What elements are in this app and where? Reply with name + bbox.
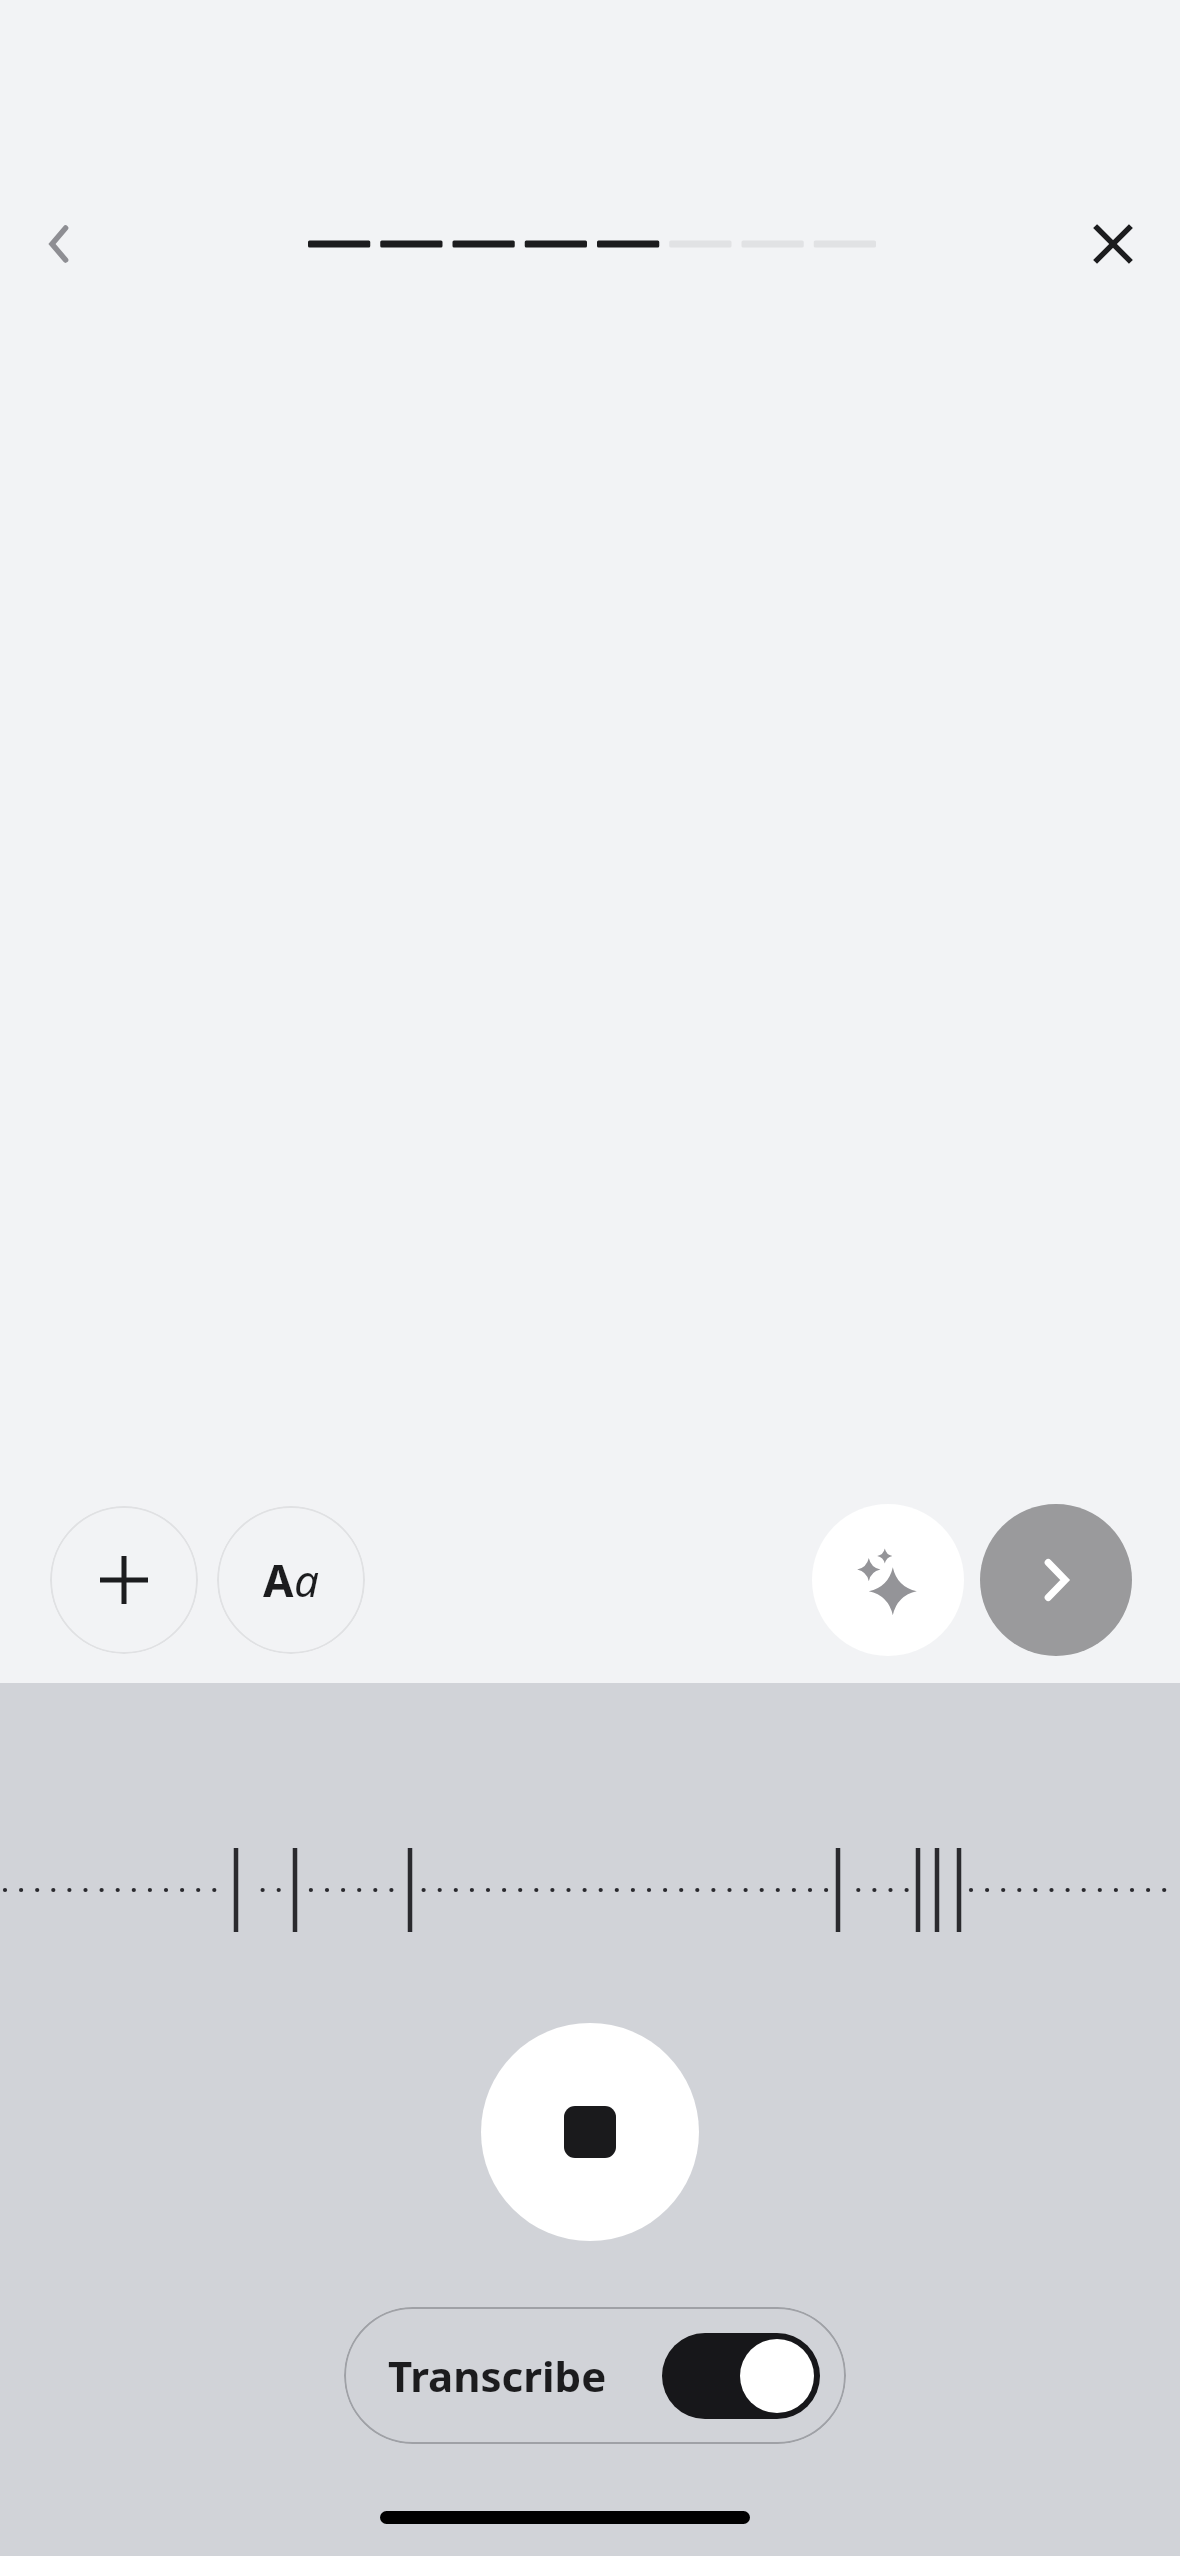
button[interactable]: Stop recording <box>481 2023 699 2241</box>
staticText: A <box>263 1550 294 1610</box>
button[interactable]: Back <box>12 196 108 292</box>
button[interactable]: Add <box>50 1506 198 1654</box>
button[interactable]: Next <box>980 1504 1132 1656</box>
button[interactable]: Text format <box>217 1506 365 1654</box>
staticText: Transcribe <box>388 2347 607 2404</box>
button[interactable]: AI assist <box>812 1504 964 1656</box>
button[interactable]: Transcribe <box>344 2307 846 2444</box>
button[interactable]: Progress <box>300 214 884 274</box>
staticText: a <box>294 1550 319 1610</box>
button[interactable]: Close <box>1065 196 1161 292</box>
